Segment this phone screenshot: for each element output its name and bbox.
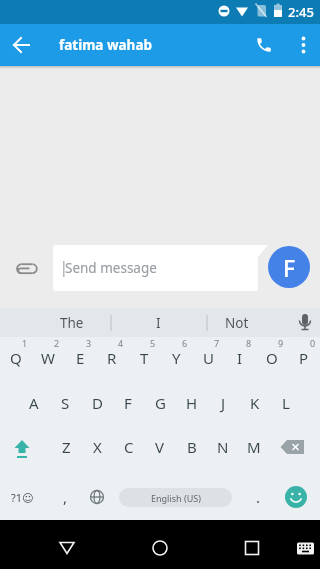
staticText: English (US): [151, 492, 201, 504]
staticText: U: [203, 348, 214, 368]
staticText: Send message: [65, 259, 157, 277]
staticText: 3: [86, 337, 92, 347]
button[interactable]: [2, 435, 42, 459]
staticText: 1: [22, 337, 28, 347]
staticText: V: [155, 437, 165, 457]
staticText: F: [124, 393, 132, 413]
staticText: R: [107, 348, 117, 368]
staticText: D: [92, 393, 103, 413]
staticText: The: [60, 314, 84, 332]
staticText: H: [186, 393, 198, 413]
staticText: T: [140, 348, 149, 368]
staticText: W: [41, 348, 55, 368]
staticText: N: [217, 437, 229, 457]
staticText: fatima wahab: [59, 36, 153, 54]
staticText: I: [156, 314, 161, 332]
button[interactable]: The: [32, 308, 112, 337]
button[interactable]: [187, 520, 280, 569]
staticText: M: [247, 437, 261, 457]
staticText: Q: [10, 348, 22, 368]
staticText: ?1☺: [11, 490, 34, 505]
staticText: E: [76, 348, 85, 368]
staticText: 4: [118, 337, 124, 347]
staticText: P: [299, 348, 309, 368]
staticText: L: [282, 393, 290, 413]
button[interactable]: [280, 520, 320, 569]
staticText: J: [221, 393, 226, 413]
button[interactable]: [278, 485, 314, 509]
button[interactable]: [0, 24, 42, 66]
staticText: A: [29, 393, 39, 413]
button[interactable]: [244, 25, 284, 65]
button[interactable]: Not: [197, 308, 277, 337]
button[interactable]: [10, 246, 44, 293]
staticText: .: [256, 487, 261, 507]
staticText: 9: [278, 337, 284, 347]
button[interactable]: English (US): [119, 488, 232, 507]
button[interactable]: ?1☺: [2, 485, 42, 509]
staticText: Not: [225, 314, 249, 332]
button[interactable]: [80, 485, 114, 509]
button[interactable]: [0, 520, 94, 569]
staticText: K: [250, 393, 260, 413]
staticText: Y: [172, 348, 181, 368]
staticText: O: [266, 348, 278, 368]
staticText: C: [124, 437, 134, 457]
staticText: B: [187, 437, 197, 457]
button[interactable]: [94, 520, 187, 569]
button[interactable]: [0, 472, 44, 520]
staticText: S: [61, 393, 70, 413]
staticText: 2: [54, 337, 60, 347]
button[interactable]: [284, 27, 320, 63]
button[interactable]: [276, 435, 312, 459]
staticText: F: [283, 252, 296, 283]
button[interactable]: I: [118, 308, 198, 337]
staticText: X: [93, 437, 102, 457]
button[interactable]: F: [268, 246, 310, 288]
staticText: ,: [63, 487, 68, 507]
staticText: 0: [310, 337, 316, 347]
button[interactable]: [287, 308, 320, 337]
staticText: 8: [246, 337, 252, 347]
staticText: 2:45: [288, 3, 314, 21]
staticText: 5: [150, 337, 156, 347]
staticText: I: [237, 348, 243, 368]
staticText: Z: [62, 437, 71, 457]
staticText: 7: [214, 337, 220, 347]
button[interactable]: [53, 245, 268, 291]
staticText: 6: [182, 337, 188, 347]
staticText: G: [155, 393, 166, 413]
